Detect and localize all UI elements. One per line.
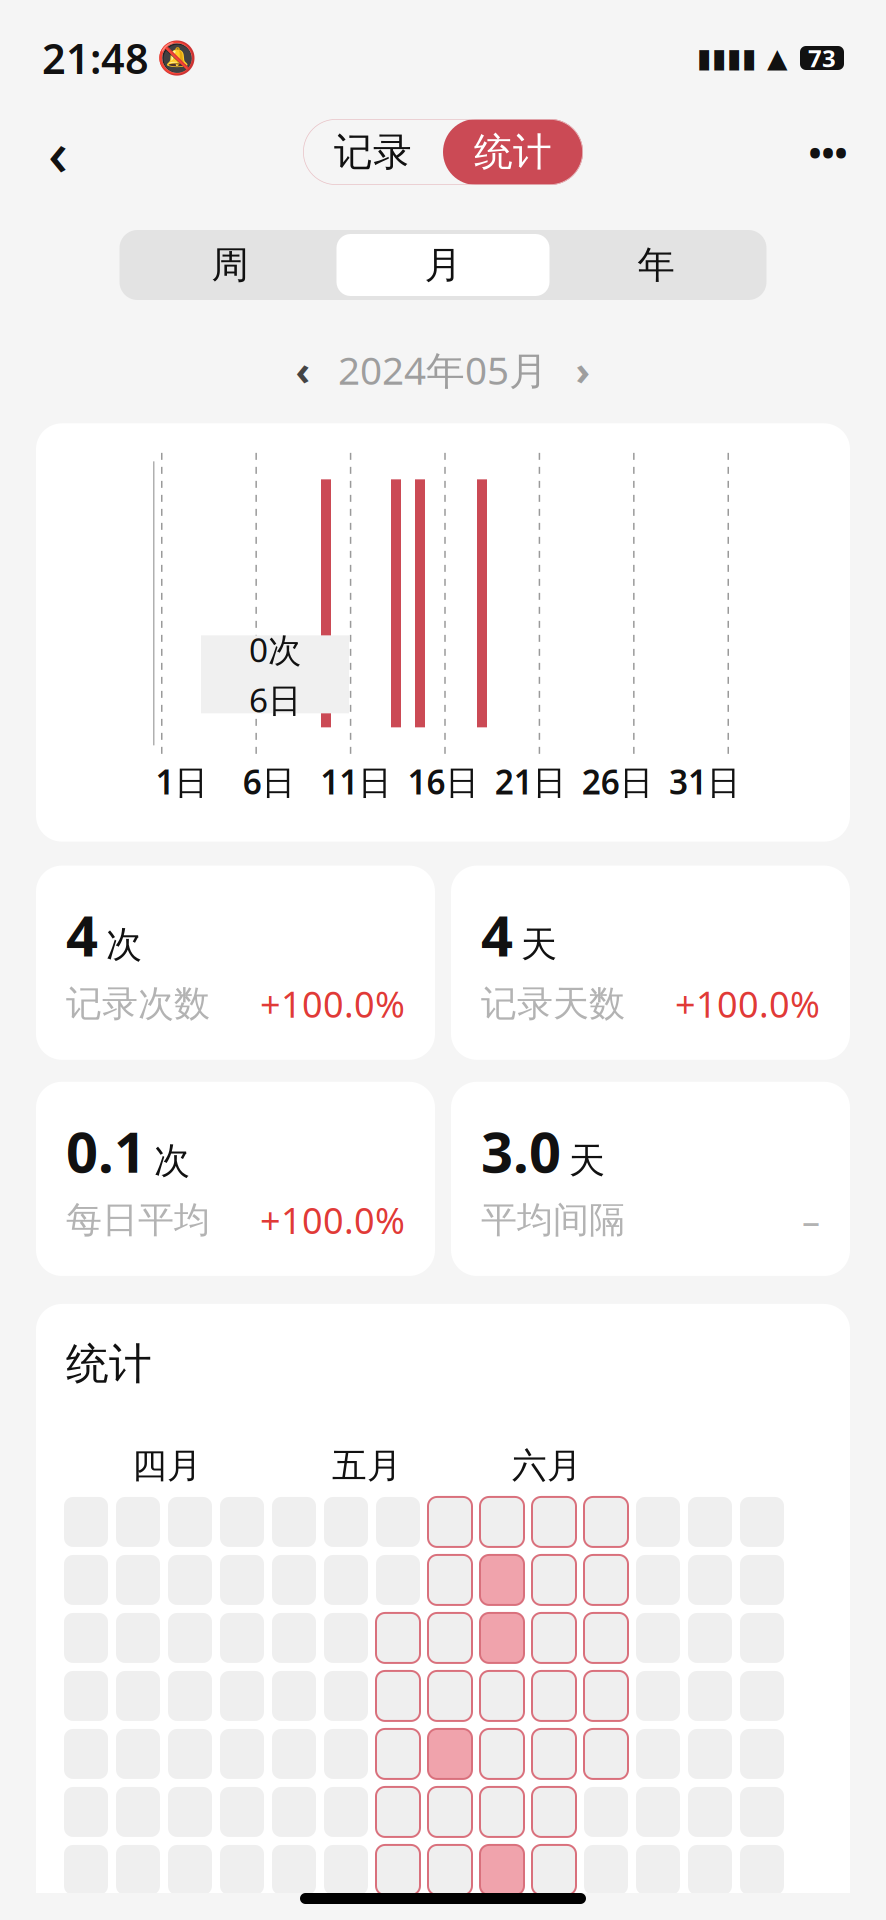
staticText: +100.0% <box>675 980 820 1028</box>
staticText: +100.0% <box>260 1196 405 1244</box>
button[interactable]: 4 <box>36 866 435 1060</box>
staticText: ‹ <box>295 343 310 396</box>
staticText: 2024年05月 <box>338 344 548 395</box>
button[interactable]: More options <box>798 122 858 182</box>
staticText: ‹ <box>48 111 68 193</box>
button[interactable]: Next month <box>558 345 608 395</box>
staticText: 11日 <box>320 759 391 804</box>
staticText: 1日 <box>156 759 208 804</box>
staticText: – <box>802 1196 820 1244</box>
staticText: 26日 <box>582 759 653 804</box>
staticText: › <box>575 343 590 396</box>
staticText: 每日平均 <box>66 1198 210 1242</box>
button[interactable]: Back <box>28 122 88 182</box>
staticText: +100.0% <box>260 980 405 1028</box>
button[interactable]: 3.0 <box>451 1082 850 1276</box>
staticText: 四月 <box>132 1444 202 1487</box>
staticText: 次 <box>106 922 142 967</box>
staticText: 统计 <box>474 128 552 176</box>
staticText: 记录次数 <box>66 982 210 1026</box>
staticText: 4 <box>66 898 98 972</box>
staticText: 记录天数 <box>481 982 625 1026</box>
staticText: 16日 <box>407 759 478 804</box>
button[interactable]: Previous month <box>278 345 328 395</box>
staticText: ▲ <box>767 43 788 73</box>
staticText: 6日 <box>243 759 295 804</box>
staticText: 🔕 <box>157 40 197 76</box>
staticText: ▮▮▮▮ <box>697 43 757 73</box>
button[interactable]: 月 <box>336 234 549 296</box>
button[interactable]: 统计 <box>443 119 583 185</box>
staticText: 21日 <box>495 759 566 804</box>
staticText: 年 <box>637 242 674 288</box>
staticText: 周 <box>211 242 248 288</box>
button[interactable]: 年 <box>549 234 762 296</box>
staticText: 六月 <box>512 1444 582 1487</box>
staticText: 0.1 <box>66 1114 146 1188</box>
staticText: 3.0 <box>481 1114 561 1188</box>
staticText: 记录 <box>334 128 412 176</box>
button[interactable]: 4 <box>451 866 850 1060</box>
staticText: 次 <box>154 1139 190 1183</box>
staticText: 21:48 <box>42 31 149 85</box>
staticText: 73 <box>808 42 836 74</box>
staticText: ••• <box>808 129 847 175</box>
staticText: 平均间隔 <box>481 1198 625 1242</box>
staticText: 0次 <box>249 627 301 671</box>
staticText: 天 <box>521 922 557 967</box>
button[interactable]: 记录 <box>303 119 443 185</box>
staticText: 4 <box>481 898 513 972</box>
staticText: 天 <box>569 1139 605 1183</box>
button[interactable]: 0.1 <box>36 1082 435 1276</box>
staticText: 统计 <box>66 1338 152 1390</box>
staticText: 月 <box>424 242 461 288</box>
button[interactable]: 周 <box>123 234 336 296</box>
staticText: 五月 <box>332 1444 402 1487</box>
staticText: 6日 <box>249 677 301 722</box>
staticText: 31日 <box>669 759 740 804</box>
